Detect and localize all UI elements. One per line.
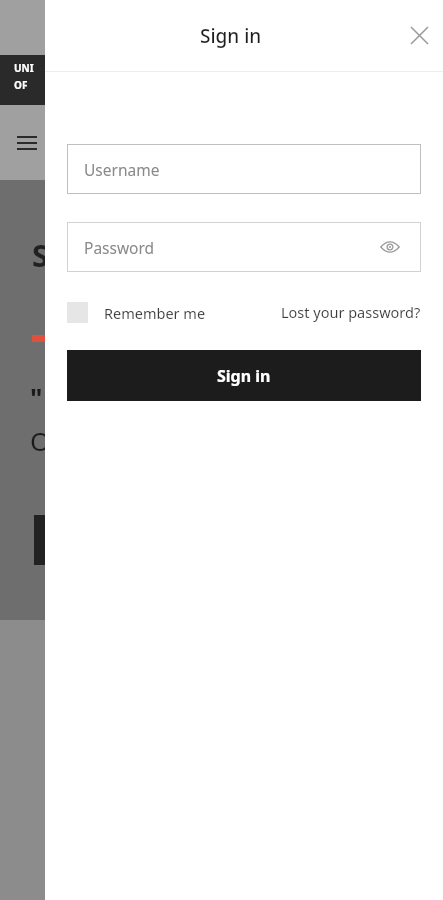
button[interactable]: Password [67,222,421,272]
staticText: Password [84,237,155,258]
staticText: Remember me [104,303,206,323]
button[interactable] [34,515,56,565]
staticText: Sign in [200,23,262,49]
button[interactable]: Menu [17,136,37,150]
button[interactable]: Username [67,144,421,194]
staticText: Lost your password? [281,302,421,322]
staticText: S [32,235,49,276]
button[interactable]: Close [395,11,443,59]
staticText: OF [14,78,28,92]
button[interactable]: Show password [376,233,404,261]
staticText: Username [84,159,160,180]
button[interactable]: Sign in [192,17,270,55]
button[interactable]: Sign in [67,350,421,401]
staticText: " [30,380,43,415]
button[interactable]: Remember me [67,302,206,323]
staticText: UNI [14,61,34,75]
staticText: O [30,423,51,458]
button[interactable]: Lost your password? [281,302,421,322]
staticText: Sign in [217,365,271,387]
